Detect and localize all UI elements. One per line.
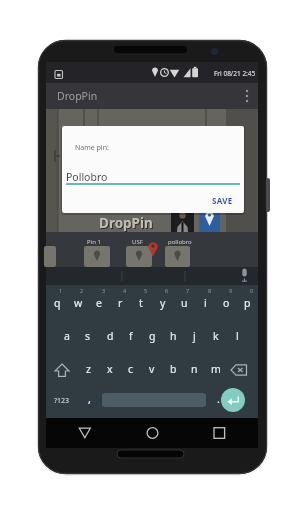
- button[interactable]: [206, 192, 238, 208]
- staticText: Fri 08/21 2:45: [214, 69, 256, 78]
- staticText: r: [118, 296, 123, 310]
- staticText: 8: [208, 287, 212, 294]
- staticText: h: [170, 329, 177, 343]
- staticText: 3: [102, 287, 106, 294]
- staticText: z: [86, 362, 91, 376]
- staticText: ,: [88, 391, 91, 406]
- staticText: f: [129, 329, 133, 343]
- staticText: 4: [123, 287, 127, 294]
- button[interactable]: [75, 423, 95, 443]
- button[interactable]: [84, 246, 110, 267]
- staticText: Pollobro: [66, 170, 108, 184]
- staticText: m: [211, 362, 221, 376]
- staticText: 1: [59, 287, 63, 294]
- button[interactable]: [50, 392, 74, 409]
- button[interactable]: [142, 423, 162, 443]
- staticText: k: [213, 329, 219, 343]
- staticText: d: [107, 329, 114, 343]
- button[interactable]: [221, 388, 245, 412]
- button[interactable]: [209, 423, 229, 443]
- staticText: USF: [132, 238, 143, 246]
- staticText: SAVE: [212, 195, 233, 206]
- staticText: u: [181, 296, 188, 310]
- staticText: j: [193, 329, 196, 343]
- staticText: 2: [80, 287, 84, 294]
- staticText: pollobro: [168, 238, 192, 246]
- button[interactable]: [199, 209, 220, 232]
- staticText: w: [74, 296, 83, 310]
- staticText: 9: [229, 287, 233, 294]
- staticText: q: [54, 296, 61, 310]
- staticText: e: [96, 296, 102, 310]
- staticText: y: [160, 296, 166, 310]
- staticText: v: [149, 362, 155, 376]
- staticText: Pin 1: [87, 238, 101, 246]
- staticText: s: [85, 329, 91, 343]
- staticText: x: [107, 362, 113, 376]
- staticText: DropPin: [57, 89, 98, 103]
- staticText: 5: [144, 287, 148, 294]
- staticText: c: [128, 362, 134, 376]
- staticText: 7: [186, 287, 190, 294]
- staticText: n: [191, 362, 198, 376]
- staticText: a: [64, 329, 70, 343]
- button[interactable]: [46, 83, 258, 109]
- button[interactable]: [165, 246, 190, 267]
- staticText: g: [149, 329, 156, 343]
- staticText: ?123: [54, 396, 70, 406]
- staticText: o: [223, 296, 230, 310]
- staticText: Name pin:: [75, 143, 109, 153]
- staticText: DropPin: [99, 214, 153, 232]
- staticText: i: [204, 296, 207, 310]
- staticText: 0: [250, 287, 254, 294]
- staticText: l: [236, 329, 239, 343]
- staticText: .: [217, 391, 220, 406]
- staticText: 6: [165, 287, 169, 294]
- button[interactable]: [126, 246, 152, 267]
- staticText: b: [170, 362, 177, 376]
- staticText: p: [244, 296, 251, 310]
- staticText: t: [139, 296, 143, 310]
- staticText: DropPin: [100, 215, 154, 233]
